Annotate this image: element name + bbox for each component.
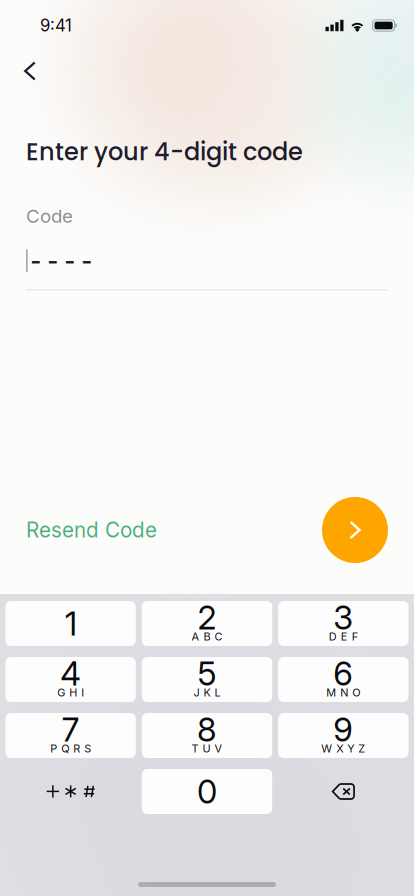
button[interactable]: Continue <box>322 497 388 563</box>
staticText: M N O <box>326 686 360 699</box>
button[interactable]: 8 <box>142 713 272 758</box>
staticText: 5 <box>197 654 216 693</box>
staticText: D E F <box>329 630 358 643</box>
button[interactable]: 3 <box>278 601 408 646</box>
staticText: Code <box>26 205 73 227</box>
staticText: 6 <box>333 654 353 693</box>
staticText: T U V <box>191 742 222 755</box>
button[interactable]: Resend Code <box>26 508 157 551</box>
button[interactable]: 4 <box>5 657 136 702</box>
button[interactable]: Back <box>8 51 52 91</box>
button[interactable]: 5 <box>142 657 272 702</box>
staticText: P Q R S <box>50 742 91 755</box>
button[interactable]: 1 <box>5 601 136 646</box>
button[interactable]: 2 <box>142 601 272 646</box>
button[interactable]: 9 <box>278 713 408 758</box>
button[interactable]: Delete <box>278 769 408 814</box>
button[interactable]: Plus, asterisk, hash <box>5 769 136 814</box>
staticText: 9:41 <box>40 15 72 36</box>
staticText: G H I <box>57 686 84 699</box>
staticText: A B C <box>191 630 222 643</box>
staticText: - - - - <box>30 246 92 275</box>
staticText: 0 <box>197 772 217 811</box>
button[interactable]: 7 <box>5 713 136 758</box>
staticText: 3 <box>333 598 353 637</box>
staticText: 1 <box>65 604 77 643</box>
staticText: 9 <box>333 710 353 749</box>
staticText: Enter your 4-digit code <box>26 135 303 169</box>
staticText: Resend Code <box>26 517 157 542</box>
staticText: 4 <box>60 654 81 693</box>
staticText: W X Y Z <box>321 742 365 755</box>
button[interactable]: 6 <box>278 657 408 702</box>
button[interactable]: 0 <box>142 769 272 814</box>
staticText: 2 <box>197 598 216 637</box>
staticText: 7 <box>62 710 80 749</box>
staticText: 8 <box>197 710 217 749</box>
staticText: J K L <box>193 686 220 699</box>
